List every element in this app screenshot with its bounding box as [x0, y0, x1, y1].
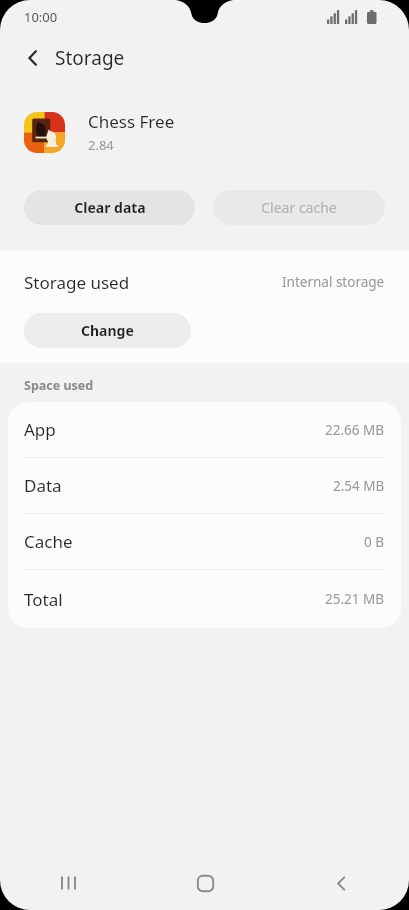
- staticText: Total: [24, 588, 63, 611]
- button[interactable]: Back: [273, 856, 409, 910]
- staticText: Internal storage: [282, 273, 385, 291]
- staticText: Space used: [24, 377, 94, 394]
- staticText: Clear cache: [261, 198, 337, 217]
- staticText: 2.84: [88, 136, 114, 154]
- staticText: Change: [81, 321, 134, 340]
- staticText: 0 B: [364, 533, 385, 551]
- button[interactable]: Total: [8, 570, 401, 628]
- button[interactable]: App: [8, 402, 401, 458]
- staticText: Data: [24, 474, 62, 497]
- staticText: App: [24, 418, 56, 441]
- button[interactable]: Back: [14, 39, 52, 77]
- button[interactable]: Home: [137, 856, 273, 910]
- button[interactable]: Clear cache: [213, 190, 385, 225]
- staticText: 2.54 MB: [333, 477, 385, 495]
- staticText: 25.21 MB: [325, 590, 385, 608]
- staticText: 10:00: [24, 8, 58, 26]
- staticText: Clear data: [74, 198, 146, 217]
- button[interactable]: Recent apps: [0, 856, 137, 910]
- button[interactable]: Data: [8, 458, 401, 514]
- button[interactable]: Clear data: [24, 190, 195, 225]
- staticText: 22.66 MB: [325, 421, 385, 439]
- staticText: Cache: [24, 530, 73, 553]
- button[interactable]: Cache: [8, 514, 401, 570]
- staticText: Storage used: [24, 271, 130, 294]
- button[interactable]: Change: [24, 313, 191, 348]
- staticText: Chess Free: [88, 110, 175, 133]
- staticText: Storage: [55, 45, 125, 71]
